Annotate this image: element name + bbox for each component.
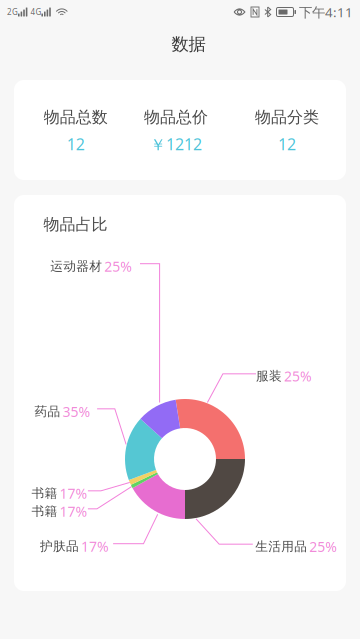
staticText: 12 xyxy=(278,133,296,155)
staticText: 物品分类 xyxy=(255,107,319,127)
staticText: 17% xyxy=(60,502,88,521)
staticText: 服装 xyxy=(256,368,282,384)
staticText: 书籍 xyxy=(32,503,58,519)
staticText: 12 xyxy=(67,133,85,155)
staticText: 35% xyxy=(62,402,90,421)
staticText: 下午4:11 xyxy=(299,3,353,21)
staticText: 2G xyxy=(7,7,18,17)
staticText: 17% xyxy=(81,537,109,556)
staticText: 25% xyxy=(284,366,312,386)
staticText: 4G xyxy=(30,7,41,17)
staticText: 17% xyxy=(60,484,88,503)
button[interactable]: 物品总价 xyxy=(123,81,228,181)
staticText: 物品总数 xyxy=(44,107,108,127)
staticText: 25% xyxy=(309,537,337,556)
staticText: 物品总价 xyxy=(144,107,208,127)
staticText: ￥1212 xyxy=(150,133,202,155)
staticText: 25% xyxy=(104,257,132,276)
staticText: 书籍 xyxy=(32,485,58,501)
staticText: 物品占比 xyxy=(43,214,107,235)
staticText: 生活用品 xyxy=(255,539,307,555)
staticText: 数据 xyxy=(171,33,205,55)
staticText: 运动器材 xyxy=(50,258,102,274)
button[interactable]: 物品总数 xyxy=(23,81,128,181)
button[interactable]: 物品分类 xyxy=(234,81,339,181)
staticText: 护肤品 xyxy=(40,538,79,554)
staticText: 药品 xyxy=(34,404,60,420)
